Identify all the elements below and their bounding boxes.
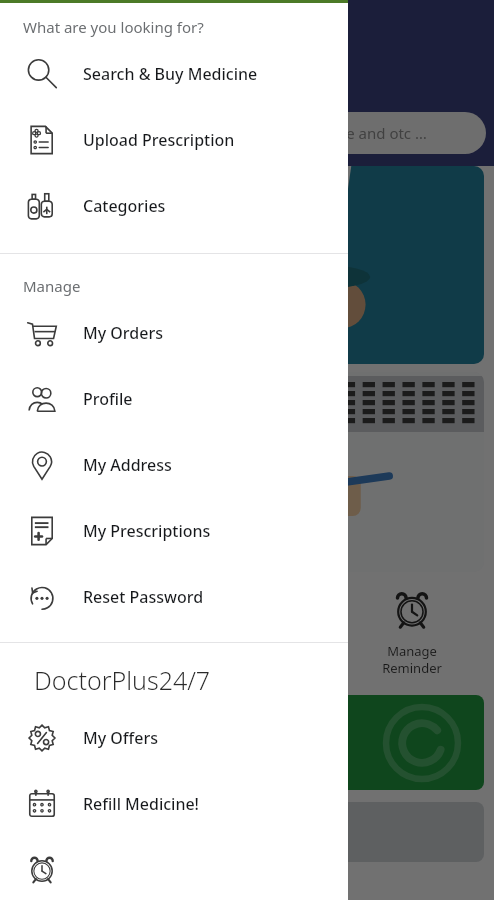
staticText: …cine and otc … [314, 123, 427, 143]
staticText: Reset Password [83, 586, 204, 608]
button[interactable]: Upload Prescription [0, 107, 348, 173]
button[interactable]: My Address [0, 432, 348, 498]
button[interactable]: Search & Buy Medicine [0, 41, 348, 107]
button[interactable]: Reminder [0, 837, 348, 900]
button[interactable]: Refill Medicine! [0, 771, 348, 837]
staticText: My Offers [83, 727, 158, 749]
button[interactable]: My Offers [0, 705, 348, 771]
staticText: Refill Medicine! [83, 793, 199, 815]
staticText: Categories [83, 195, 166, 217]
staticText: My Prescriptions [83, 520, 211, 542]
button[interactable] [10, 695, 484, 790]
staticText: Profile [83, 388, 133, 410]
button[interactable]: …cine and otc … [300, 112, 486, 154]
staticText: Search & Buy Medicine [83, 63, 258, 85]
staticText: My Orders [83, 322, 163, 344]
button[interactable]: Categories [0, 173, 348, 239]
button[interactable]: My Prescriptions [0, 498, 348, 564]
button[interactable]: Reset Password [0, 564, 348, 630]
staticText: Upload Prescription [83, 129, 235, 151]
staticText: What are you looking for? [23, 17, 204, 37]
staticText: Manage Reminder [382, 642, 442, 677]
button[interactable]: Manage Reminder [344, 586, 480, 677]
staticText: Manage [23, 276, 81, 296]
button[interactable]: Profile [0, 366, 348, 432]
staticText: DoctorPlus24/7 [34, 663, 211, 697]
button[interactable]: My Orders [0, 300, 348, 366]
staticText: My Address [83, 454, 172, 476]
